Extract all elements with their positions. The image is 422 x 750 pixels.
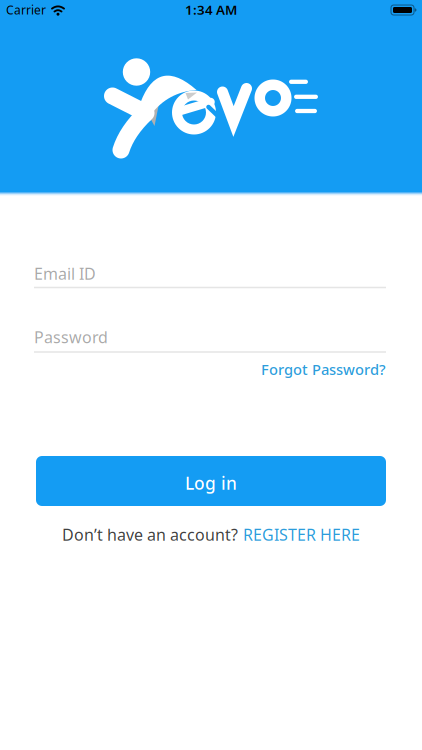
staticText: Carrier xyxy=(6,2,46,18)
button[interactable]: Email ID xyxy=(34,263,386,288)
staticText: Don’t have an account? xyxy=(62,524,238,545)
staticText: Password xyxy=(34,326,108,348)
staticText: Forgot Password? xyxy=(261,359,386,379)
button[interactable]: Log in xyxy=(36,456,386,506)
staticText: REGISTER HERE xyxy=(243,524,360,545)
button[interactable]: Password xyxy=(34,326,386,353)
staticText: Email ID xyxy=(34,263,96,284)
button[interactable]: REGISTER HERE xyxy=(243,524,360,545)
staticText: Log in xyxy=(185,471,237,494)
button[interactable]: Forgot Password? xyxy=(261,359,386,379)
staticText: 1:34 AM xyxy=(185,1,237,18)
